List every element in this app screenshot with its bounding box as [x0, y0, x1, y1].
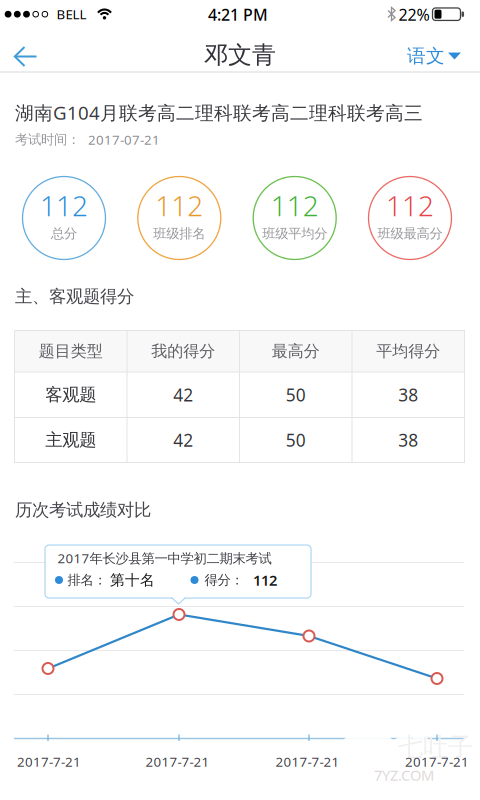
staticText: 邓文青 — [204, 40, 276, 70]
staticText: 2017-7-21 — [17, 753, 81, 770]
staticText: 50 — [286, 428, 306, 451]
staticText: 七吐子 — [398, 731, 473, 762]
staticText: 2017-07-21 — [88, 131, 160, 148]
staticText: 2017-7-21 — [275, 753, 339, 770]
staticText: 2017-7-21 — [146, 753, 210, 770]
staticText: 班级最高分 — [377, 225, 442, 242]
staticText: 最高分 — [272, 341, 320, 361]
staticText: 客观题 — [45, 384, 96, 405]
staticText: BELL — [56, 5, 86, 23]
staticText: 语文 — [407, 44, 445, 67]
staticText: 112 — [40, 187, 88, 224]
staticText: 4:21 PM — [208, 4, 268, 25]
button[interactable]: 语文 — [395, 31, 467, 81]
staticText: 112 — [253, 570, 277, 590]
staticText: 38 — [398, 428, 418, 451]
staticText: 7YZ.COM — [374, 765, 434, 785]
staticText: 排名： — [67, 572, 106, 588]
staticText: 主观题 — [45, 429, 96, 451]
staticText: 50 — [286, 383, 306, 406]
button[interactable] — [3, 35, 47, 77]
staticText: 38 — [398, 383, 418, 406]
staticText: 2017-7-21 — [405, 753, 469, 770]
staticText: 42 — [173, 383, 193, 406]
staticText: 第十名 — [110, 571, 155, 589]
staticText: 我的得分 — [151, 341, 215, 361]
staticText: 平均得分 — [376, 341, 440, 361]
staticText: 总分 — [51, 225, 77, 242]
staticText: 考试时间： — [15, 131, 80, 148]
staticText: 班级排名 — [153, 225, 205, 242]
staticText: 2017年长沙县第一中学初二期末考试 — [57, 549, 271, 567]
staticText: 112 — [386, 187, 434, 224]
staticText: 湖南G104月联考高二理科联考高二理科联考高三 — [15, 100, 423, 125]
staticText: 112 — [155, 187, 203, 224]
staticText: 历次考试成绩对比 — [15, 499, 151, 521]
staticText: 班级平均分 — [262, 225, 327, 242]
staticText: 112 — [271, 187, 319, 224]
staticText: 主、客观题得分 — [15, 286, 134, 307]
staticText: 得分： — [204, 572, 243, 588]
staticText: 题目类型 — [39, 341, 103, 361]
staticText: 42 — [173, 428, 193, 451]
staticText: 22% — [398, 4, 429, 25]
